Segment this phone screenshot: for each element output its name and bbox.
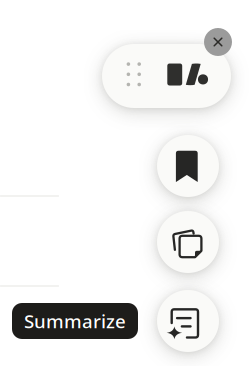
button[interactable]: Close — [204, 28, 232, 56]
button[interactable]: Copy — [157, 211, 219, 273]
staticText: Summarize — [24, 309, 126, 333]
button[interactable]: Save — [157, 135, 219, 197]
button[interactable]: Summarize — [157, 290, 219, 352]
button[interactable]: Assistant — [102, 44, 231, 108]
